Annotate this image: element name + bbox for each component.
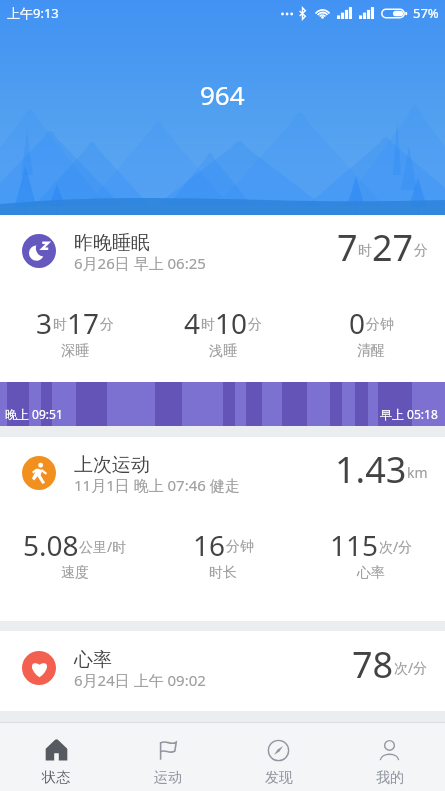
staticText: 发现: [265, 769, 293, 787]
staticText: 清醒: [357, 342, 385, 360]
button[interactable]: Sleep: [0, 215, 445, 275]
staticText: 78: [352, 640, 394, 689]
staticText: 4: [184, 304, 201, 342]
staticText: 3: [36, 304, 53, 342]
staticText: 27: [372, 223, 414, 272]
staticText: 我的: [376, 769, 404, 787]
staticText: 上午9:13: [7, 4, 59, 22]
staticText: 115: [330, 526, 379, 564]
staticText: 次/分: [379, 537, 413, 556]
staticText: 晚上 09:51: [5, 406, 63, 422]
staticText: 分: [100, 316, 114, 334]
button[interactable]: 运动: [112, 723, 223, 791]
staticText: 分钟: [226, 538, 254, 556]
staticText: 时长: [209, 564, 237, 582]
staticText: 时: [53, 316, 67, 334]
staticText: 早上 05:18: [380, 406, 438, 422]
staticText: 次/分: [394, 658, 428, 677]
staticText: 964: [200, 77, 245, 112]
button[interactable]: Last workout: [0, 437, 445, 497]
staticText: 心率: [357, 564, 385, 582]
staticText: 分: [414, 242, 428, 260]
staticText: 7: [337, 223, 358, 272]
staticText: 状态: [42, 769, 70, 787]
staticText: 时: [358, 242, 372, 260]
staticText: 17: [67, 304, 100, 342]
staticText: 速度: [61, 564, 89, 582]
other: Last workout: [22, 456, 56, 490]
staticText: 11月1日 晚上 07:46 健走: [74, 475, 240, 495]
button[interactable]: 状态: [0, 723, 112, 791]
staticText: 5.08: [23, 526, 79, 564]
staticText: 6月26日 早上 06:25: [74, 253, 206, 273]
staticText: 10: [215, 304, 248, 342]
staticText: 公里/时: [79, 537, 127, 556]
button[interactable]: Heart rate: [0, 631, 445, 692]
staticText: 分钟: [366, 316, 394, 334]
button[interactable]: 我的: [334, 723, 445, 791]
button[interactable]: 晚上 09:51: [0, 382, 445, 426]
staticText: 1.43: [335, 445, 407, 494]
staticText: 57%: [413, 4, 439, 22]
staticText: 0: [349, 304, 366, 342]
staticText: km: [407, 463, 428, 482]
staticText: 心率: [74, 648, 112, 672]
staticText: 上次运动: [74, 453, 150, 477]
button[interactable]: 发现: [223, 723, 334, 791]
staticText: 16: [193, 526, 226, 564]
other: Sleep: [22, 234, 56, 268]
staticText: 分: [248, 316, 262, 334]
staticText: 6月24日 上午 09:02: [74, 670, 206, 690]
staticText: 时: [201, 316, 215, 334]
staticText: 昨晚睡眠: [74, 231, 150, 255]
other: Heart rate: [22, 651, 56, 685]
staticText: 深睡: [61, 342, 89, 360]
staticText: 浅睡: [209, 342, 237, 360]
staticText: 运动: [154, 769, 182, 787]
